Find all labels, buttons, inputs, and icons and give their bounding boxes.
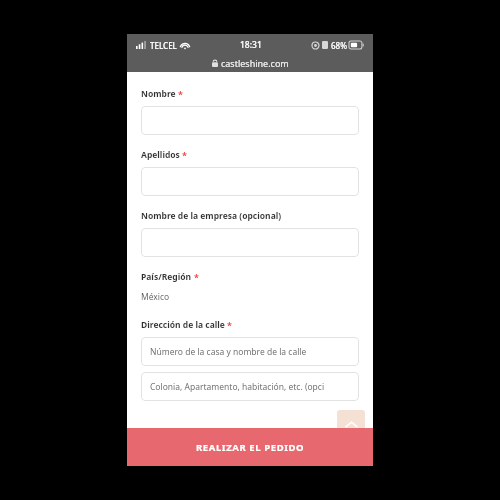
staticText: * [227, 319, 232, 331]
staticText: México [141, 291, 170, 303]
staticText: castleshine.com [221, 57, 289, 69]
staticText: TELCEL [150, 40, 177, 51]
staticText: 18:31 [240, 39, 262, 51]
staticText: REALIZAR EL PEDIDO [196, 441, 305, 454]
staticText: Nombre de la empresa (opcional) [141, 210, 282, 222]
staticText: * [178, 88, 183, 100]
button[interactable] [141, 228, 359, 257]
staticText: * [194, 271, 199, 283]
staticText: Dirección de la calle [141, 319, 225, 331]
staticText: Número de la casa y nombre de la calle [150, 346, 307, 358]
button[interactable]: Colonia, Apartamento, habitación, etc. (… [141, 372, 359, 401]
staticText: Colonia, Apartamento, habitación, etc. (… [150, 381, 325, 393]
button[interactable]: castleshine.com [127, 54, 373, 71]
button[interactable] [141, 106, 359, 135]
button[interactable] [141, 167, 359, 196]
button[interactable]: REALIZAR EL PEDIDO [127, 428, 373, 466]
staticText: Nombre [141, 88, 176, 100]
staticText: Apellidos [141, 149, 180, 161]
staticText: * [182, 149, 187, 161]
button[interactable]: Número de la casa y nombre de la calle [141, 337, 359, 366]
button[interactable]: Volver arriba [337, 410, 365, 438]
staticText: País/Región [141, 271, 192, 283]
staticText: 68% [331, 40, 347, 51]
